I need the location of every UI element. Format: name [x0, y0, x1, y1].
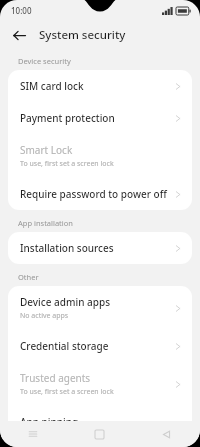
button[interactable]: Credential storage: [8, 330, 192, 362]
staticText: Payment protection: [20, 111, 115, 125]
staticText: Credential storage: [20, 339, 109, 353]
button[interactable]: Recent apps: [0, 421, 66, 447]
button[interactable]: Require password to power off: [8, 178, 192, 210]
button[interactable]: Installation sources: [8, 232, 192, 264]
staticText: Other: [18, 272, 200, 282]
staticText: App pinning: [20, 415, 79, 429]
staticText: Installation sources: [20, 241, 114, 255]
staticText: To use, first set a screen lock: [20, 159, 114, 169]
button[interactable]: Device admin apps: [8, 286, 192, 330]
button[interactable]: Smart Lock: [8, 134, 192, 178]
button[interactable]: Trusted agents: [8, 362, 192, 406]
button[interactable]: App pinning: [8, 406, 192, 447]
staticText: System security: [39, 27, 126, 43]
staticText: Require password to power off: [20, 187, 167, 201]
staticText: SIM card lock: [20, 79, 84, 93]
button[interactable]: Back: [133, 421, 200, 447]
button[interactable]: Home: [66, 421, 133, 447]
staticText: No active apps: [20, 311, 69, 321]
staticText: Smart Lock: [20, 143, 73, 157]
staticText: Device admin apps: [20, 295, 111, 309]
button[interactable]: Back: [8, 24, 30, 46]
staticText: Device security: [18, 56, 200, 66]
button[interactable]: SIM card lock: [8, 70, 192, 102]
staticText: Off: [20, 431, 31, 438]
button[interactable]: Payment protection: [8, 102, 192, 134]
staticText: 10:00: [11, 5, 32, 16]
staticText: App installation: [18, 218, 200, 228]
staticText: Trusted agents: [20, 371, 91, 385]
staticText: To use, first set a screen lock: [20, 387, 114, 397]
